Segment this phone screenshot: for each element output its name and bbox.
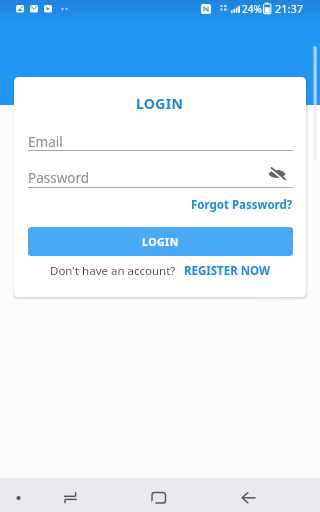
staticText: Password (28, 169, 90, 187)
button[interactable]: REGISTER NOW (184, 263, 271, 279)
staticText: Forgot Password? (191, 197, 293, 213)
staticText: REGISTER NOW (184, 263, 271, 279)
button[interactable]: Password (28, 169, 293, 191)
staticText: Email (28, 133, 63, 151)
staticText: 24% (242, 2, 262, 16)
button[interactable]: Email (28, 133, 293, 155)
staticText: 21:37 (275, 1, 304, 16)
button[interactable]: Forgot Password? (191, 197, 293, 213)
staticText: LOGIN (142, 235, 179, 249)
button[interactable] (144, 484, 174, 510)
button[interactable] (56, 484, 86, 510)
staticText: LOGIN (136, 94, 184, 113)
button[interactable]: LOGIN (28, 227, 293, 256)
button[interactable] (232, 484, 262, 510)
button[interactable] (265, 167, 289, 181)
staticText: Don't have an account? (50, 263, 176, 279)
